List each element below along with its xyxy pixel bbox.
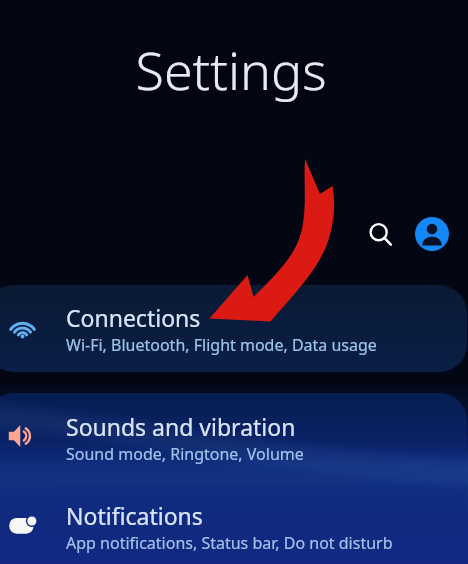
button[interactable]: Search xyxy=(358,212,402,256)
staticText: Sounds and vibration xyxy=(66,411,296,442)
button[interactable]: Notifications xyxy=(0,482,454,564)
staticText: Sound mode, Ringtone, Volume xyxy=(66,443,304,465)
button[interactable]: Account xyxy=(415,217,449,251)
staticText: Wi-Fi, Bluetooth, Flight mode, Data usag… xyxy=(66,334,377,356)
staticText: Connections xyxy=(66,302,201,333)
staticText: App notifications, Status bar, Do not di… xyxy=(66,532,393,554)
staticText: Settings xyxy=(0,34,465,105)
button[interactable]: Connections xyxy=(0,285,454,372)
staticText: Notifications xyxy=(66,500,203,531)
button[interactable]: Sounds and vibration xyxy=(0,393,454,482)
